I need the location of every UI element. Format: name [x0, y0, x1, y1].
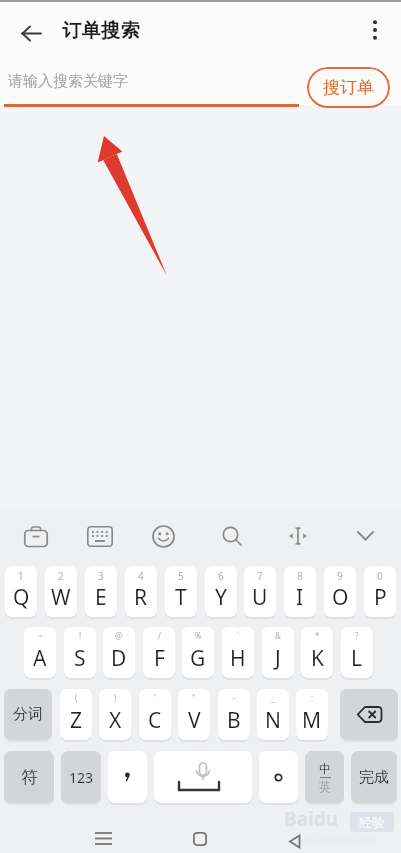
button[interactable]	[282, 520, 314, 552]
staticText: ?	[355, 630, 359, 641]
staticText: 4	[138, 569, 144, 583]
button[interactable]: 3	[85, 566, 117, 617]
button[interactable]	[85, 823, 121, 853]
button[interactable]: 完成	[351, 751, 397, 803]
staticText: (	[75, 692, 78, 703]
button[interactable]	[259, 751, 298, 803]
staticText: D	[111, 644, 127, 673]
staticText: 6	[218, 569, 224, 583]
staticText: L	[351, 644, 363, 673]
staticText: 8	[297, 569, 303, 583]
staticText: 1	[18, 569, 24, 583]
staticText: !	[79, 630, 82, 641]
button[interactable]: "	[178, 689, 210, 740]
staticText: Y	[215, 583, 227, 612]
staticText: ~	[38, 630, 43, 641]
button[interactable]	[360, 15, 390, 45]
button[interactable]	[20, 520, 52, 552]
button[interactable]: 2	[45, 566, 77, 617]
staticText: 中	[319, 761, 331, 776]
staticText: 9	[337, 569, 343, 583]
staticText: M	[302, 706, 322, 735]
button[interactable]: 0	[364, 566, 396, 617]
button[interactable]: *	[301, 627, 333, 678]
staticText: /	[158, 630, 161, 641]
staticText: 分词	[13, 705, 43, 724]
staticText: 英	[319, 779, 331, 794]
staticText: Baidu	[284, 806, 339, 832]
staticText: U	[252, 583, 268, 612]
staticText: B	[227, 706, 241, 735]
button[interactable]	[108, 751, 147, 803]
button[interactable]: _	[257, 689, 289, 740]
button[interactable]: 中	[305, 751, 344, 803]
staticText: H	[230, 644, 246, 673]
button[interactable]: ´	[222, 627, 254, 678]
button[interactable]: ~	[24, 627, 56, 678]
staticText: O	[332, 583, 349, 612]
staticText: V	[188, 706, 201, 735]
staticText: *	[315, 630, 320, 641]
button[interactable]: 9	[324, 566, 356, 617]
staticText: jingyan.baidu.com	[298, 834, 376, 846]
button[interactable]	[182, 824, 218, 853]
button[interactable]	[349, 520, 381, 552]
button[interactable]: 分词	[4, 689, 52, 740]
staticText: 7	[257, 569, 263, 583]
staticText: 2	[58, 569, 64, 583]
staticText: Z	[70, 706, 83, 735]
staticText: S	[74, 644, 86, 673]
button[interactable]: /	[143, 627, 175, 678]
button[interactable]: :	[296, 689, 328, 740]
staticText: F	[154, 644, 165, 673]
button[interactable]	[340, 689, 398, 740]
button[interactable]: 6	[205, 566, 237, 617]
staticText: @	[115, 630, 123, 641]
button[interactable]: %	[182, 627, 214, 678]
button[interactable]: 8	[284, 566, 316, 617]
staticText: C	[148, 706, 162, 735]
button[interactable]	[10, 12, 52, 54]
button[interactable]	[84, 520, 116, 552]
staticText: 经验	[359, 814, 385, 830]
staticText: %	[195, 630, 202, 641]
staticText: )	[114, 692, 117, 703]
staticText: 符	[21, 767, 38, 788]
staticText: "	[192, 692, 196, 703]
button[interactable]: 123	[61, 751, 101, 803]
staticText: W	[51, 583, 71, 612]
button[interactable]: &	[262, 627, 294, 678]
staticText: I	[296, 583, 304, 612]
button[interactable]	[154, 751, 252, 803]
staticText: X	[109, 706, 122, 735]
button[interactable]: 7	[244, 566, 276, 617]
button[interactable]: 搜订单	[307, 67, 390, 108]
staticText: K	[311, 644, 324, 673]
button[interactable]: '	[139, 689, 171, 740]
staticText: 搜订单	[323, 77, 374, 98]
button[interactable]: ?	[341, 627, 373, 678]
staticText: P	[374, 583, 387, 612]
button[interactable]: (	[60, 689, 92, 740]
button[interactable]	[147, 520, 179, 552]
staticText: Q	[13, 583, 30, 612]
button[interactable]	[216, 520, 248, 552]
staticText: 完成	[359, 768, 389, 787]
staticText: :	[311, 692, 314, 703]
staticText: -	[233, 692, 236, 703]
button[interactable]: 5	[165, 566, 197, 617]
button[interactable]	[276, 826, 312, 853]
button[interactable]: 4	[125, 566, 157, 617]
button[interactable]: !	[64, 627, 96, 678]
staticText: 请输入搜索关键字	[8, 72, 128, 91]
button[interactable]: -	[218, 689, 250, 740]
button[interactable]: 1	[5, 566, 37, 617]
staticText: 123	[69, 768, 94, 787]
staticText: ´	[237, 630, 240, 641]
button[interactable]: 符	[4, 751, 54, 803]
staticText: '	[154, 692, 156, 703]
button[interactable]: @	[103, 627, 135, 678]
staticText: _	[271, 692, 275, 703]
button[interactable]: 请输入搜索关键字	[4, 63, 299, 106]
button[interactable]: )	[99, 689, 131, 740]
